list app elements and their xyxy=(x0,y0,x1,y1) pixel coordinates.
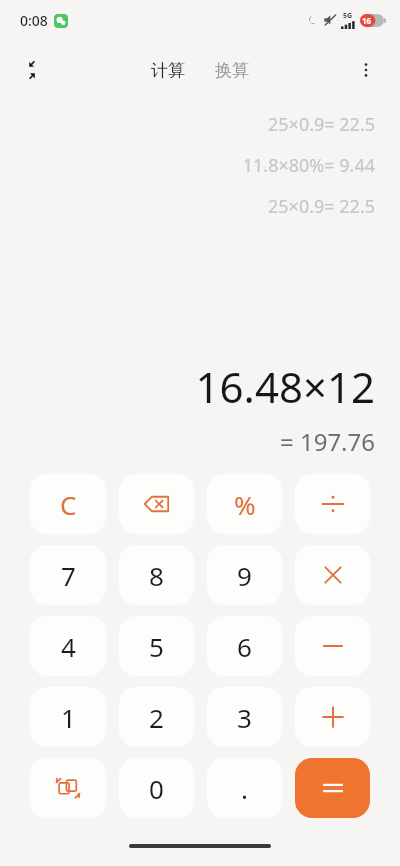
button[interactable]: 3 xyxy=(207,687,282,747)
staticText: 9 xyxy=(237,558,252,593)
button[interactable]: 0 xyxy=(119,758,194,818)
other: Backspace xyxy=(143,490,171,518)
staticText: % xyxy=(234,487,256,522)
button[interactable]: Minus xyxy=(295,616,370,676)
button[interactable]: 7 xyxy=(30,545,106,605)
button[interactable]: C xyxy=(30,474,106,534)
staticText: = 197.76 xyxy=(279,425,375,458)
button[interactable]: Backspace xyxy=(119,474,194,534)
staticText: 2 xyxy=(149,700,164,735)
staticText: 0 xyxy=(149,771,164,806)
button[interactable]: 6 xyxy=(207,616,282,676)
staticText: 6 xyxy=(237,629,252,664)
button[interactable]: More options xyxy=(346,50,386,90)
button[interactable]: 11.8×80%= 9.44 xyxy=(242,153,375,178)
button[interactable]: 换算 xyxy=(207,54,257,87)
other: Multiply xyxy=(321,563,345,587)
staticText: 1 xyxy=(61,700,76,735)
button[interactable]: 5 xyxy=(119,616,194,676)
button[interactable]: 8 xyxy=(119,545,194,605)
button[interactable]: Divide xyxy=(295,474,370,534)
staticText: 5 xyxy=(149,629,164,664)
button[interactable]: 25×0.9= 22.5 xyxy=(268,194,375,219)
other: Convert units xyxy=(55,775,81,801)
staticText: 16 xyxy=(362,15,372,26)
staticText: 换算 xyxy=(215,60,249,81)
staticText: 7 xyxy=(61,558,76,593)
button[interactable]: 1 xyxy=(30,687,106,747)
other: Minus xyxy=(321,634,345,658)
button[interactable]: . xyxy=(207,758,282,818)
staticText: 0:08 xyxy=(20,11,48,30)
button[interactable]: 9 xyxy=(207,545,282,605)
staticText: 3 xyxy=(237,700,252,735)
button[interactable]: 计算 xyxy=(143,54,193,87)
staticText: 25×0.9= 22.5 xyxy=(268,112,375,137)
staticText: . xyxy=(241,771,248,806)
button[interactable]: 2 xyxy=(119,687,194,747)
staticText: 8 xyxy=(149,558,164,593)
staticText: 16.48×12 xyxy=(195,358,375,415)
other: Divide xyxy=(320,491,346,517)
staticText: 11.8×80%= 9.44 xyxy=(242,153,375,178)
button[interactable]: % xyxy=(207,474,282,534)
staticText: 4 xyxy=(61,629,76,664)
button[interactable]: 25×0.9= 22.5 xyxy=(268,112,375,137)
button[interactable]: 4 xyxy=(30,616,106,676)
staticText: 25×0.9= 22.5 xyxy=(268,194,375,219)
button[interactable]: Equals xyxy=(295,758,370,818)
button[interactable]: Collapse xyxy=(12,50,52,90)
button[interactable]: Convert units xyxy=(30,758,106,818)
other: Plus xyxy=(320,704,346,730)
staticText: 5G xyxy=(343,11,353,21)
staticText: 计算 xyxy=(151,60,185,81)
button[interactable]: Multiply xyxy=(295,545,370,605)
button[interactable]: Plus xyxy=(295,687,370,747)
staticText: C xyxy=(60,487,77,522)
